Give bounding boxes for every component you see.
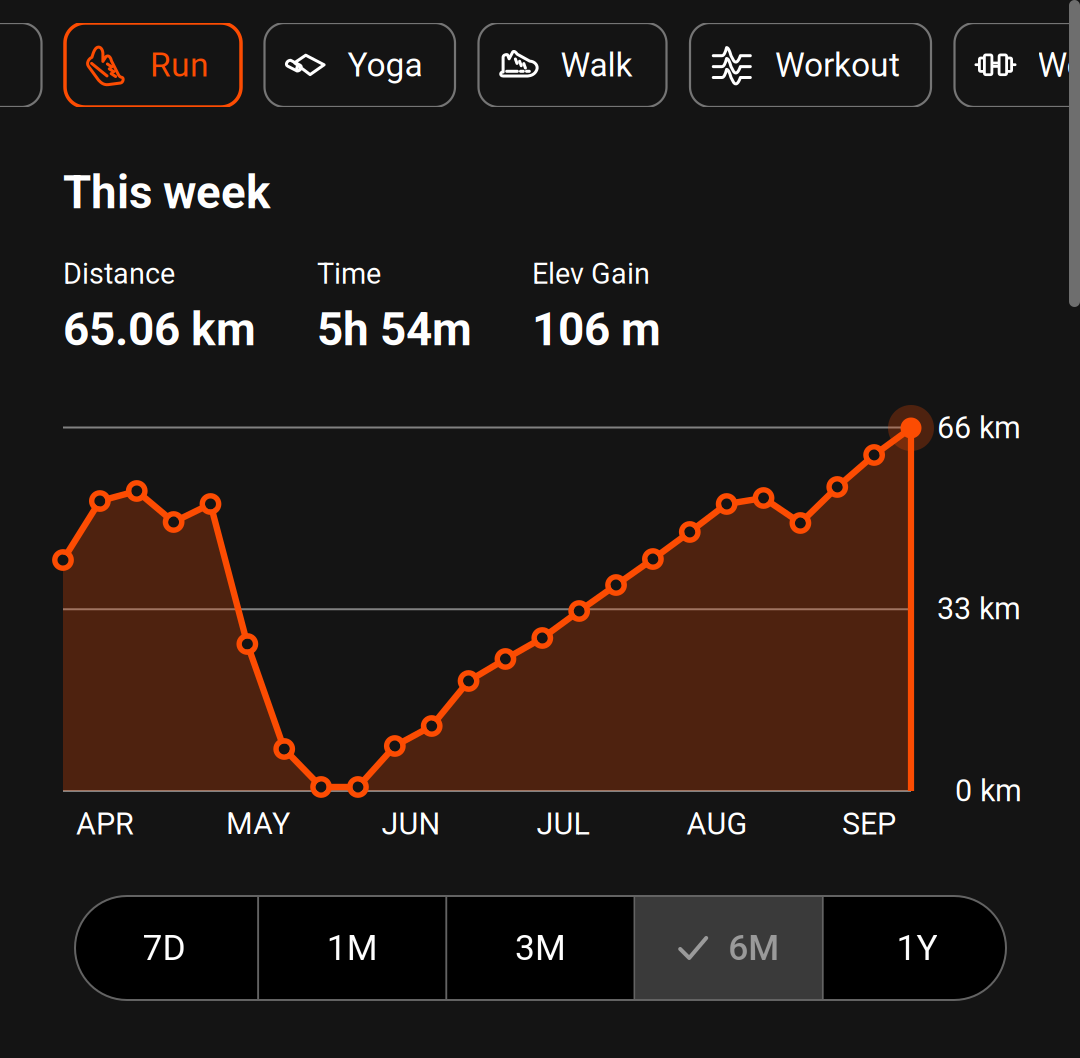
staticText: MAY	[226, 806, 290, 842]
button[interactable]: Yoga	[264, 23, 455, 107]
staticText: Elev Gain	[532, 257, 650, 291]
button[interactable]: Run	[65, 23, 241, 107]
button[interactable]: 7D	[71, 896, 257, 1000]
staticText: 5h 54m	[317, 303, 472, 357]
staticText: 66 km	[937, 410, 1021, 446]
button[interactable]: 1M	[259, 896, 445, 1000]
staticText: 6M	[728, 927, 779, 969]
button[interactable]: Workout	[690, 23, 931, 107]
button[interactable]: 3M	[447, 896, 634, 1000]
staticText: Yoga	[347, 45, 422, 85]
staticText: Run	[150, 45, 209, 85]
staticText: JUN	[381, 806, 440, 842]
button[interactable]	[0, 23, 41, 107]
button[interactable]: 6M	[636, 896, 822, 1000]
staticText: APR	[76, 806, 134, 842]
staticText: 1M	[327, 927, 378, 969]
staticText: 3M	[515, 927, 566, 969]
staticText: 0 km	[955, 773, 1022, 809]
button[interactable]: Weights	[954, 23, 1080, 107]
staticText: Distance	[63, 257, 175, 291]
staticText: 1Y	[896, 927, 937, 969]
staticText: 7D	[143, 927, 186, 969]
button[interactable]: Walk	[478, 23, 666, 107]
staticText: Weights	[1037, 45, 1080, 85]
staticText: 65.06 km	[63, 303, 256, 357]
staticText: 33 km	[937, 591, 1021, 627]
staticText: AUG	[686, 806, 747, 842]
button[interactable]: 1Y	[824, 896, 1010, 1000]
staticText: This week	[63, 166, 270, 219]
staticText: Walk	[560, 45, 632, 85]
staticText: SEP	[842, 806, 896, 842]
staticText: 106 m	[532, 303, 661, 357]
staticText: Time	[317, 257, 381, 291]
staticText: Workout	[775, 45, 900, 85]
staticText: JUL	[536, 806, 589, 842]
